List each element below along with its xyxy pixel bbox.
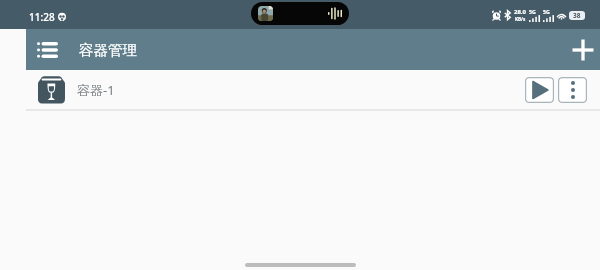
staticText: KB/s: [515, 16, 526, 22]
staticText: 容器-1: [77, 81, 115, 99]
button[interactable]: Menu: [26, 29, 68, 70]
staticText: 5G: [543, 8, 550, 15]
staticText: 28.0: [514, 8, 526, 16]
staticText: 38: [573, 11, 581, 20]
staticText: 容器管理: [79, 41, 137, 59]
button[interactable]: Play: [525, 77, 554, 103]
staticText: 11:28: [29, 10, 55, 24]
button[interactable]: More options: [558, 77, 587, 103]
staticText: 5G: [529, 8, 536, 15]
button[interactable]: 容器-1: [0, 70, 600, 109]
button[interactable]: Add: [565, 29, 600, 70]
